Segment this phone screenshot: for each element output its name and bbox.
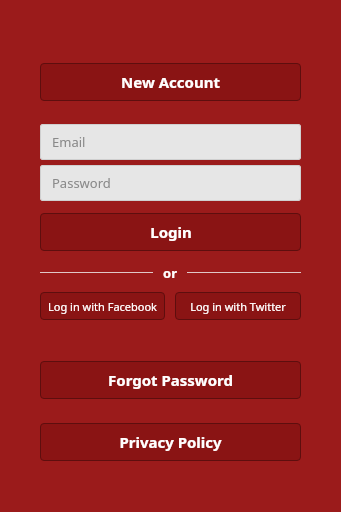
staticText: Forgot Password <box>108 370 233 390</box>
button[interactable]: Forgot Password <box>40 361 301 399</box>
staticText: or <box>163 264 177 280</box>
button[interactable]: Password <box>40 165 301 201</box>
staticText: Email <box>52 133 86 151</box>
button[interactable]: Email <box>40 124 301 160</box>
button[interactable]: Log in with Facebook <box>40 292 165 320</box>
button[interactable]: Privacy Policy <box>40 423 301 461</box>
staticText: Login <box>150 222 192 242</box>
staticText: New Account <box>121 72 220 92</box>
button[interactable]: Log in with Twitter <box>175 292 301 320</box>
staticText: Privacy Policy <box>119 432 222 452</box>
staticText: Log in with Twitter <box>190 299 286 314</box>
staticText: Log in with Facebook <box>48 299 157 314</box>
button[interactable]: Login <box>40 213 301 251</box>
button[interactable]: New Account <box>40 63 301 101</box>
staticText: Password <box>52 174 111 192</box>
